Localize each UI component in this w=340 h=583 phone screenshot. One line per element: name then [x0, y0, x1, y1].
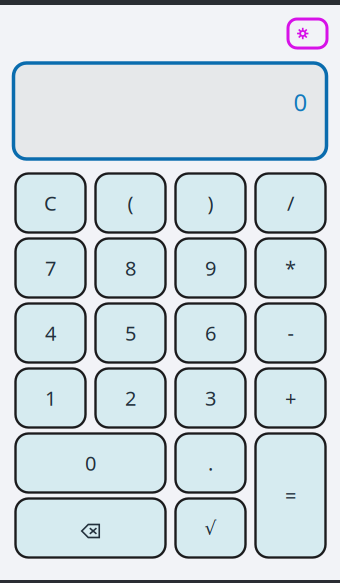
staticText: * — [285, 255, 296, 281]
button[interactable]: C — [15, 173, 85, 232]
staticText: + — [285, 385, 296, 411]
staticText: 6 — [205, 320, 216, 346]
button[interactable]: 3 — [175, 368, 245, 427]
staticText: 4 — [45, 320, 56, 346]
staticText: 3 — [205, 385, 216, 411]
button[interactable]: * — [255, 238, 325, 297]
button[interactable]: 5 — [95, 303, 165, 362]
button[interactable]: 1 — [15, 368, 85, 427]
button[interactable]: √ — [175, 498, 245, 557]
staticText: 5 — [125, 320, 136, 346]
button[interactable]: . — [175, 433, 245, 492]
button[interactable]: 7 — [15, 238, 85, 297]
staticText: / — [287, 190, 294, 216]
staticText: 1 — [45, 385, 56, 411]
staticText: = — [285, 482, 296, 509]
staticText: ) — [207, 190, 213, 216]
staticText: √ — [204, 517, 216, 539]
button[interactable]: + — [255, 368, 325, 427]
button[interactable]: 8 — [95, 238, 165, 297]
staticText: C — [44, 190, 57, 216]
button[interactable]: / — [255, 173, 325, 232]
button[interactable]: 0 — [15, 433, 165, 492]
button[interactable]: Settings — [288, 19, 327, 48]
staticText: 7 — [45, 255, 56, 281]
button[interactable]: 9 — [175, 238, 245, 297]
button[interactable]: 6 — [175, 303, 245, 362]
staticText: - — [287, 320, 293, 346]
button[interactable]: = — [255, 433, 325, 557]
button[interactable]: - — [255, 303, 325, 362]
button[interactable]: Delete — [15, 498, 165, 557]
button[interactable]: ) — [175, 173, 245, 232]
staticText: 2 — [125, 385, 136, 411]
button[interactable]: 2 — [95, 368, 165, 427]
staticText: . — [208, 450, 213, 476]
button[interactable]: 4 — [15, 303, 85, 362]
staticText: 0 — [85, 450, 96, 476]
staticText: 8 — [125, 255, 136, 281]
staticText: 0 — [293, 86, 307, 118]
staticText: 9 — [205, 255, 216, 281]
button[interactable]: ( — [95, 173, 165, 232]
staticText: ( — [127, 190, 133, 216]
